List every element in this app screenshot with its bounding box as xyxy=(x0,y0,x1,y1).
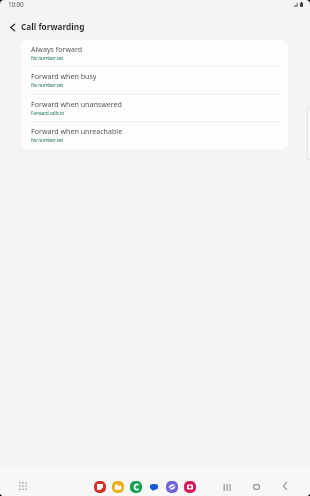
staticText: Always forward xyxy=(31,44,83,54)
button[interactable]: App xyxy=(94,481,106,493)
staticText: No number set xyxy=(31,55,63,62)
button[interactable]: App xyxy=(130,481,142,493)
staticText: 10:00 xyxy=(8,0,24,9)
button[interactable]: Apps xyxy=(14,477,32,495)
staticText: Forward when unanswered xyxy=(31,99,122,109)
staticText: Call forwarding xyxy=(21,21,85,32)
button[interactable]: Forward when unanswered xyxy=(21,95,288,122)
staticText: Forward calls to xyxy=(31,110,65,117)
button[interactable]: Recents xyxy=(217,478,235,496)
button[interactable]: App xyxy=(184,481,196,493)
button[interactable]: Navigate up xyxy=(5,20,19,34)
staticText: Forward when unreachable xyxy=(31,126,123,136)
button[interactable]: App xyxy=(112,481,124,493)
button[interactable]: Forward when unreachable xyxy=(21,122,288,149)
button[interactable]: Home xyxy=(247,478,265,496)
button[interactable]: Back xyxy=(276,477,294,495)
button[interactable]: App xyxy=(166,481,178,493)
staticText: No number set xyxy=(31,82,63,89)
button[interactable]: Always forward xyxy=(21,40,288,67)
button[interactable]: App xyxy=(148,481,160,493)
staticText: No number set xyxy=(31,137,63,144)
staticText: Forward when busy xyxy=(31,71,97,81)
button[interactable]: Edge panel xyxy=(307,107,310,160)
button[interactable]: Forward when busy xyxy=(21,67,288,95)
